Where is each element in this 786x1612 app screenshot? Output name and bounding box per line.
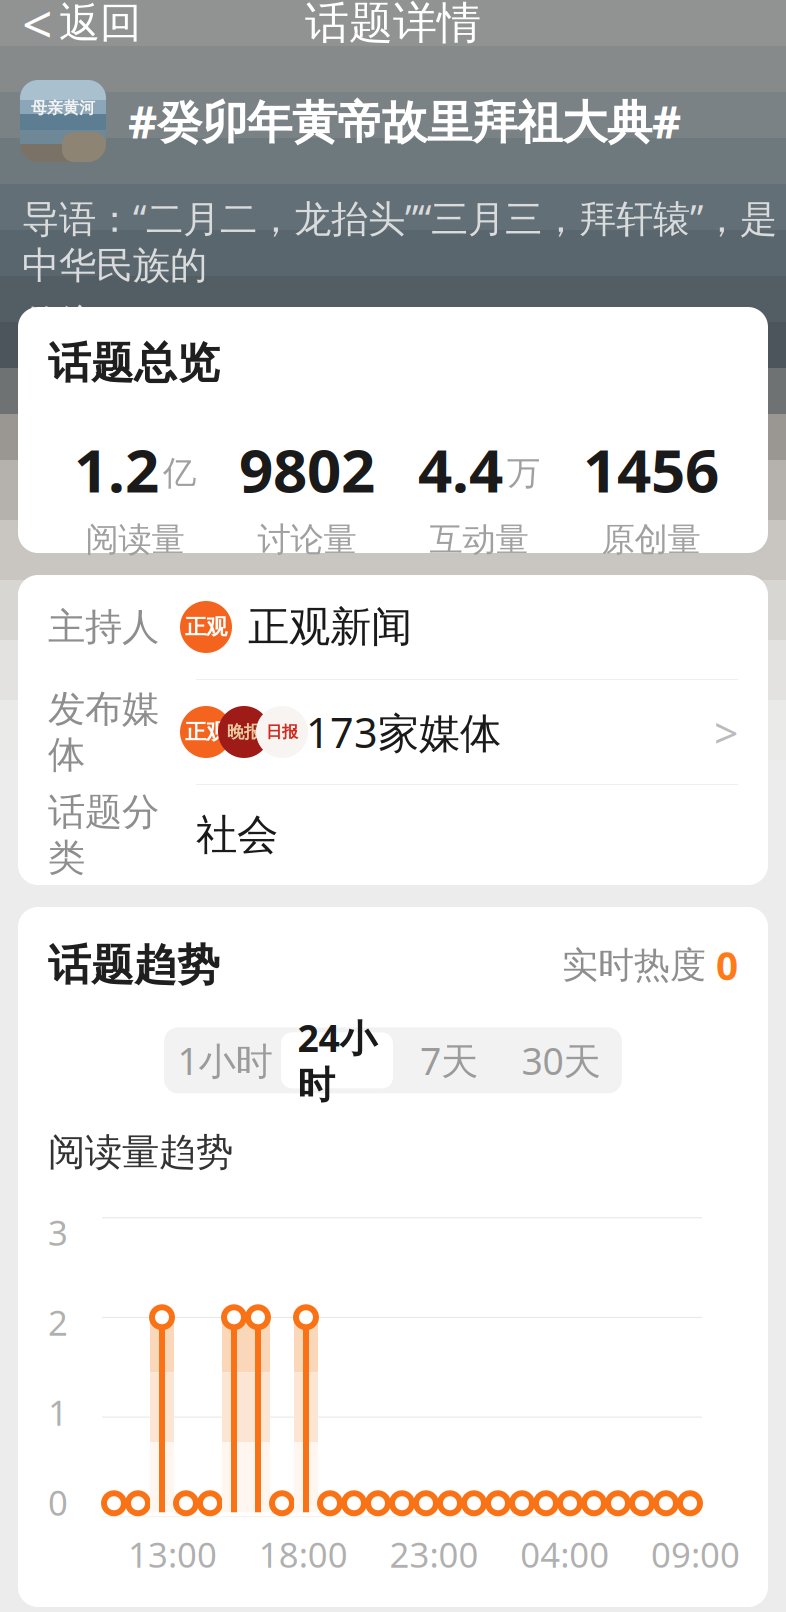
button[interactable]: 24小时 <box>281 1032 393 1088</box>
staticText: 7天 <box>420 1036 478 1085</box>
staticText: 话题详情 <box>305 0 481 50</box>
staticText: 传统。 <box>22 300 133 346</box>
staticText: 09:00 <box>651 1531 740 1577</box>
staticText: 话题总览 <box>48 337 220 389</box>
staticText: 9802 <box>239 429 375 509</box>
staticText: 0 <box>48 1479 68 1525</box>
staticText: 30天 <box>521 1036 600 1085</box>
staticText: 亿 <box>163 453 196 494</box>
button[interactable]: 1小时 <box>169 1032 281 1088</box>
staticText: 正观新闻 <box>248 602 412 652</box>
staticText: 24小时 <box>297 1013 376 1108</box>
staticText: 0 <box>716 939 738 991</box>
staticText: 1 <box>48 1389 68 1435</box>
staticText: 13:00 <box>128 1531 217 1577</box>
staticText: 实时热度 <box>562 943 706 987</box>
staticText: 3 <box>48 1209 68 1255</box>
staticText: 正观 <box>185 719 227 745</box>
staticText: 1.2 <box>74 429 159 509</box>
staticText: 发布媒体 <box>48 686 159 778</box>
staticText: 正观 <box>185 614 227 640</box>
staticText: 2 <box>48 1299 68 1345</box>
staticText: #癸卯年黄帝故里拜祖大典# <box>128 91 681 151</box>
staticText: 话题分类 <box>48 789 159 881</box>
staticText: 讨论量 <box>257 519 356 560</box>
staticText: 主持人 <box>48 604 159 650</box>
staticText: 1456 <box>583 429 719 509</box>
staticText: 23:00 <box>389 1531 478 1577</box>
staticText: > <box>714 704 738 760</box>
button[interactable]: 7天 <box>393 1032 505 1088</box>
staticText: 18:00 <box>259 1531 348 1577</box>
staticText: 04:00 <box>520 1531 609 1577</box>
staticText: 万 <box>507 453 540 494</box>
staticText: 导语：“二月二，龙抬头”“三月三，拜轩辕”，是中华民族的 <box>22 193 777 288</box>
staticText: 原创量 <box>601 519 700 560</box>
button[interactable]: 发布媒体 <box>18 680 768 784</box>
staticText: 1小时 <box>177 1036 272 1085</box>
staticText: < <box>22 0 53 58</box>
staticText: 话题趋势 <box>48 939 220 991</box>
staticText: 阅读量 <box>85 519 184 560</box>
button[interactable]: < <box>0 0 159 59</box>
staticText: 日报 <box>266 722 298 742</box>
staticText: 母亲黄河 <box>31 98 95 118</box>
staticText: 互动量 <box>429 519 528 560</box>
staticText: 阅读量趋势 <box>48 1129 233 1175</box>
staticText: 173家媒体 <box>306 705 501 759</box>
staticText: 社会 <box>196 810 278 860</box>
staticText: 晚报 <box>227 721 261 743</box>
button[interactable]: 30天 <box>505 1032 617 1088</box>
staticText: 返回 <box>59 0 141 48</box>
staticText: 4.4 <box>418 429 503 509</box>
